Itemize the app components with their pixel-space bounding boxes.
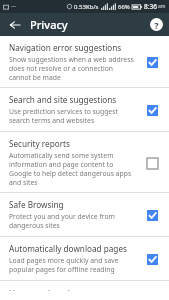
button[interactable]: Automatically download pages <box>141 248 163 270</box>
button[interactable]: Automatically download pages <box>0 237 169 280</box>
button[interactable]: Usage and crash reports <box>0 281 169 300</box>
staticText: Use prediction services to suggest searc… <box>9 107 136 125</box>
staticText: am <box>158 3 166 10</box>
button[interactable]: Navigation error suggestions <box>0 36 169 87</box>
staticText: 0.53Kb/s <box>74 3 99 11</box>
button[interactable]: Security reports <box>0 132 169 192</box>
button[interactable]: Search and site suggestions <box>0 88 169 131</box>
button[interactable]: Safe Browsing <box>141 204 163 226</box>
staticText: Safe Browsing <box>9 199 64 210</box>
staticText: Security reports <box>9 138 70 149</box>
staticText: ? <box>154 19 159 31</box>
staticText: — <box>11 3 17 10</box>
button[interactable]: Search and site suggestions <box>141 99 163 121</box>
staticText: Show suggestions when a web address does… <box>9 55 136 82</box>
staticText: Navigation error suggestions <box>9 42 122 53</box>
staticText: 66% <box>118 3 130 11</box>
button[interactable]: Safe Browsing <box>0 193 169 236</box>
staticText: 8:36 <box>144 2 157 11</box>
staticText: Privacy <box>30 17 68 32</box>
button[interactable]: Security reports <box>141 152 163 174</box>
staticText: Usage and crash reports <box>9 288 104 291</box>
button[interactable]: Help <box>143 13 169 36</box>
staticText: Protect you and your device from dangero… <box>9 212 136 230</box>
staticText: Automatically download pages <box>9 243 127 254</box>
button[interactable]: Back <box>0 13 30 36</box>
staticText: Load pages more quickly and save popular… <box>9 256 136 274</box>
button[interactable]: Navigation error suggestions <box>141 51 163 73</box>
staticText: Search and site suggestions <box>9 94 117 105</box>
staticText: Automatically send some system informati… <box>9 151 136 187</box>
